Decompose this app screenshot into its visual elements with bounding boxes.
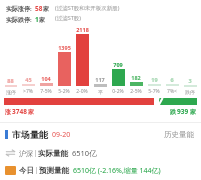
staticText: 今日 [19, 166, 34, 175]
staticText: 1 [35, 15, 39, 24]
button[interactable]: 182 [127, 74, 145, 95]
staticText: 家 [43, 5, 49, 13]
staticText: 3 [188, 77, 192, 84]
button[interactable]: 104 [37, 75, 55, 95]
staticText: >7% [23, 88, 33, 95]
staticText: 涨停 [6, 89, 16, 95]
staticText: 跌停 [185, 89, 195, 95]
staticText: 市场量能 [12, 129, 48, 140]
button[interactable]: 涨 [5, 107, 34, 116]
staticText: 跌 [170, 108, 176, 116]
button[interactable]: 709 [109, 61, 127, 95]
staticText: 58 [35, 4, 43, 13]
button[interactable]: 跌 [170, 107, 196, 116]
staticText: 实际跌停: [6, 16, 32, 24]
staticText: 2-5% [130, 88, 142, 95]
staticText: 7-5% [40, 88, 52, 95]
staticText: 实际量能 [38, 149, 68, 158]
staticText: 0-2% [112, 88, 124, 95]
staticText: 6 [170, 76, 174, 83]
staticText: 家 [28, 108, 34, 116]
button[interactable]: Legend forecast volume [5, 166, 196, 175]
button[interactable]: 45 [19, 76, 37, 95]
button[interactable]: 117 [91, 76, 109, 95]
staticText: 182 [131, 74, 141, 81]
other: Legend actual volume [5, 149, 16, 157]
staticText: 预测量能 [39, 166, 69, 175]
staticText: 6510亿 [72, 148, 97, 158]
staticText: 6510亿 (-2.16%,缩量 144亿) [73, 166, 161, 175]
button[interactable]: 1395 [55, 44, 73, 95]
staticText: 家 [39, 16, 45, 24]
staticText: (过滤ST股和未开板次新股) [55, 4, 120, 12]
staticText: 939 [177, 107, 189, 116]
button[interactable] [4, 98, 197, 105]
button[interactable]: 19 [145, 76, 163, 95]
staticText: 7%< [167, 88, 177, 95]
button[interactable]: 6 [163, 76, 181, 95]
staticText: 117 [95, 76, 105, 83]
staticText: 3748 [12, 107, 27, 116]
staticText: 45 [25, 76, 32, 83]
staticText: 历史量能 [164, 130, 194, 139]
staticText: 5-7% [148, 88, 160, 95]
staticText: 09-20 [52, 130, 71, 140]
button[interactable]: Legend actual volume [5, 148, 196, 158]
staticText: 涨 [5, 108, 11, 116]
staticText: 家 [190, 108, 196, 116]
staticText: 19 [151, 76, 158, 83]
staticText: 5-2% [58, 88, 70, 95]
other: Legend forecast volume [5, 166, 16, 175]
staticText: (过滤ST股) [55, 14, 81, 22]
staticText: 709 [113, 61, 123, 68]
staticText: 88 [7, 77, 14, 84]
staticText: 平 [98, 89, 103, 95]
staticText: 2118 [76, 26, 89, 33]
staticText: 实际涨停: [6, 5, 32, 13]
button[interactable]: 3 [181, 77, 199, 95]
staticText: 1395 [58, 44, 71, 51]
button[interactable]: 实际涨停: [4, 3, 51, 25]
staticText: 沪深 [19, 149, 33, 158]
staticText: 104 [41, 75, 51, 82]
button[interactable]: 2118 [73, 26, 91, 95]
staticText: 2-0% [76, 88, 88, 95]
button[interactable]: 历史量能 [162, 128, 196, 141]
button[interactable]: 88 [2, 77, 19, 95]
